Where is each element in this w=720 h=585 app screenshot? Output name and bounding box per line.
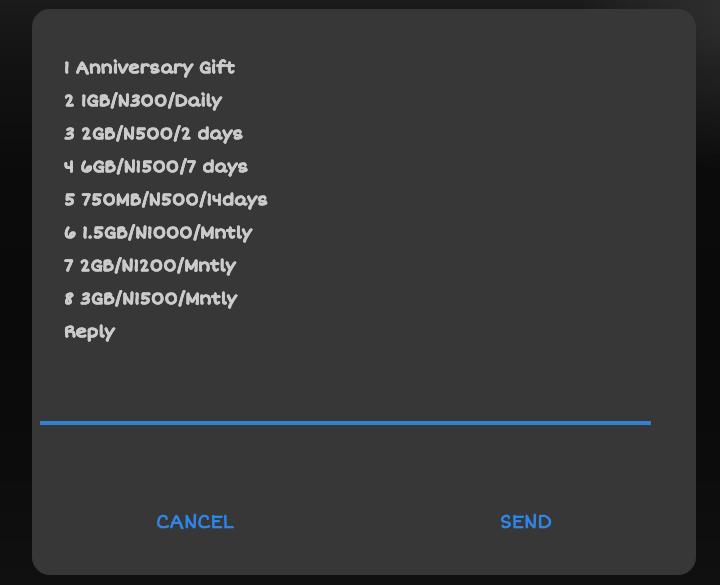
staticText: 5 750MB/N500/14days xyxy=(64,189,269,210)
staticText: SEND xyxy=(500,510,552,533)
staticText: 4 6GB/N1500/7 days xyxy=(64,156,249,177)
staticText: 6 1.5GB/N1000/Mntly xyxy=(64,222,252,243)
staticText: 2 1GB/N300/Daily xyxy=(64,90,222,111)
staticText: 1 Anniversary Gift xyxy=(64,57,236,78)
staticText: 3 2GB/N500/2 days xyxy=(64,123,244,144)
staticText: 5 750MB/N500/14days xyxy=(64,189,269,210)
staticText: 7 2GB/N1200/Mntly xyxy=(64,255,236,276)
button[interactable]: CANCEL xyxy=(124,497,268,545)
staticText: 8 3GB/N1500/Mntly xyxy=(64,288,237,309)
staticText: Reply xyxy=(64,321,115,342)
staticText: 1 Anniversary Gift xyxy=(64,57,236,78)
staticText: 2 1GB/N300/Daily xyxy=(64,90,222,111)
staticText: 3 2GB/N500/2 days xyxy=(64,123,244,144)
staticText: 6 1.5GB/N1000/Mntly xyxy=(64,222,252,243)
staticText: 7 2GB/N1200/Mntly xyxy=(64,255,236,276)
button[interactable]: Reply input field xyxy=(40,365,651,425)
button[interactable]: SEND xyxy=(470,497,614,545)
staticText: Reply xyxy=(64,321,115,342)
staticText: CANCEL xyxy=(156,510,234,533)
staticText: 8 3GB/N1500/Mntly xyxy=(64,288,237,309)
staticText: 4 6GB/N1500/7 days xyxy=(64,156,249,177)
